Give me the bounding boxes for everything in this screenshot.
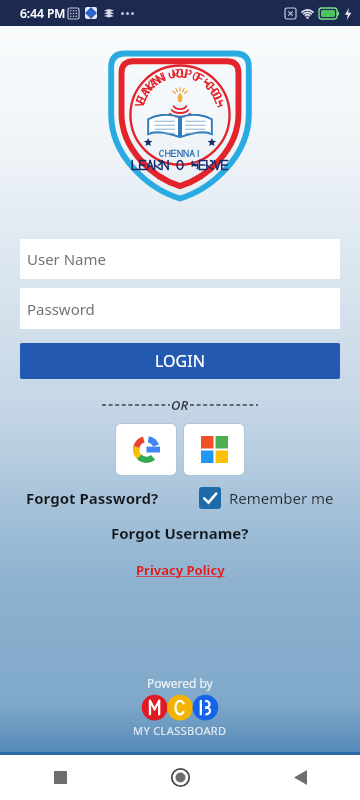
- button[interactable]: Password: [20, 288, 340, 329]
- staticText: Powered by: [147, 675, 213, 691]
- staticText: Forgot Username?: [111, 523, 249, 543]
- staticText: Privacy Policy: [136, 561, 225, 579]
- staticText: User Name: [27, 249, 107, 269]
- staticText: 6:44 PM: [20, 5, 66, 21]
- staticText: OR: [171, 396, 189, 414]
- staticText: Forgot Password?: [26, 488, 159, 508]
- button[interactable]: LOGIN: [20, 343, 340, 379]
- button[interactable]: Forgot Password?: [26, 485, 159, 511]
- button[interactable]: Sign in with Google: [116, 424, 176, 475]
- button[interactable]: Forgot Username?: [111, 521, 249, 545]
- button[interactable]: Back: [240, 755, 360, 800]
- button[interactable]: Home: [120, 755, 240, 800]
- staticText: Password: [27, 299, 95, 319]
- staticText: MY CLASSBOARD: [133, 723, 227, 738]
- staticText: Remember me: [229, 488, 334, 508]
- button[interactable]: Remember me: [199, 487, 334, 509]
- button[interactable]: Recent apps: [0, 755, 120, 800]
- button[interactable]: Sign in with Microsoft: [184, 424, 244, 475]
- button[interactable]: User Name: [20, 239, 340, 279]
- button[interactable]: Privacy Policy: [136, 559, 225, 581]
- staticText: LOGIN: [155, 350, 205, 372]
